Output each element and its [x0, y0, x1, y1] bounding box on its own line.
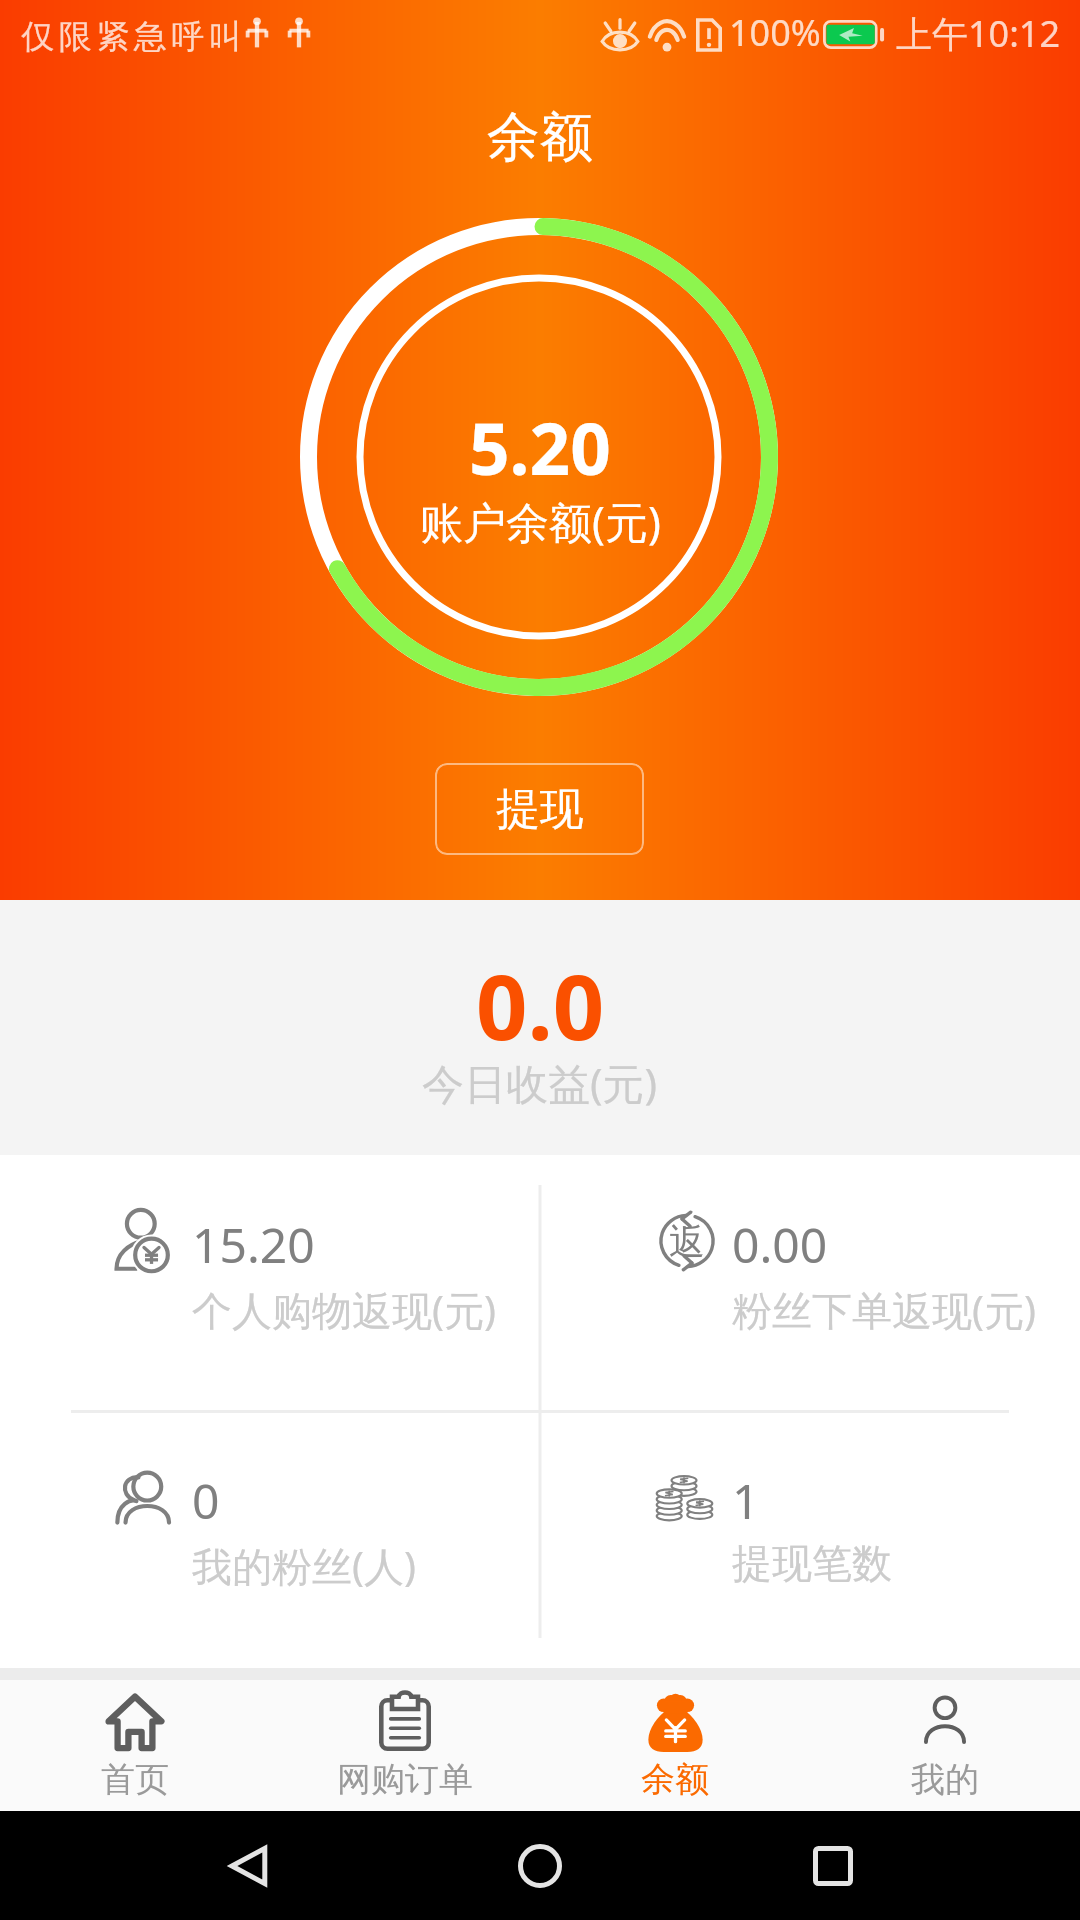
staticText: 100% — [729, 8, 821, 57]
staticText: 账户余额(元) — [420, 492, 661, 551]
staticText: 我的 — [911, 1758, 979, 1801]
staticText: 1 — [732, 1468, 760, 1533]
staticText: 15.20 — [192, 1212, 315, 1277]
staticText: 0.0 — [476, 944, 605, 1067]
button[interactable]: 网购订单 — [270, 1680, 540, 1811]
button[interactable]: 余额 — [540, 1680, 810, 1811]
button[interactable]: 我的 — [810, 1680, 1080, 1811]
staticText: 余额 — [641, 1758, 709, 1801]
button[interactable]: 1 — [540, 1411, 1080, 1668]
staticText: 0 — [192, 1468, 220, 1533]
staticText: 返 — [669, 1219, 705, 1264]
button[interactable]: 首页 — [0, 1680, 270, 1811]
staticText: 粉丝下单返现(元) — [732, 1282, 1036, 1337]
staticText: 我的粉丝(人) — [192, 1538, 416, 1593]
staticText: 余额 — [487, 104, 593, 171]
staticText: 个人购物返现(元) — [192, 1282, 496, 1337]
staticText: 网购订单 — [337, 1758, 473, 1801]
button[interactable]: 15.20 — [0, 1155, 540, 1411]
staticText: 提现 — [496, 782, 584, 837]
staticText: 仅限紧急呼叫 — [19, 16, 244, 58]
staticText: 提现笔数 — [732, 1538, 892, 1588]
staticText: 0.00 — [732, 1212, 828, 1277]
staticText: 今日收益(元) — [422, 1054, 658, 1111]
staticText: 上午10:12 — [896, 9, 1061, 58]
button[interactable]: Back — [203, 1821, 293, 1911]
staticText: 5.20 — [469, 399, 611, 496]
staticText: 首页 — [101, 1758, 169, 1801]
button[interactable]: Home — [495, 1821, 585, 1911]
button[interactable]: 提现 — [435, 763, 644, 855]
button[interactable]: 返 — [540, 1155, 1080, 1411]
button[interactable]: Recents — [788, 1821, 878, 1911]
button[interactable]: 0 — [0, 1411, 540, 1668]
